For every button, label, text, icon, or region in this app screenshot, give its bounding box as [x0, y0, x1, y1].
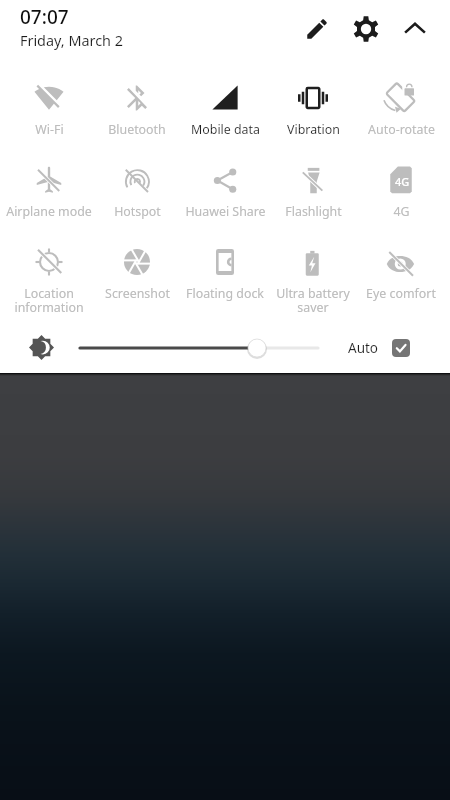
button[interactable]: Location information	[5, 237, 93, 319]
button[interactable]: Mobile data	[181, 73, 269, 155]
button[interactable]: Screenshot	[93, 237, 181, 319]
staticText: Auto-rotate	[368, 121, 435, 138]
staticText: 07:07	[20, 4, 69, 30]
button[interactable]: Bluetooth	[93, 73, 181, 155]
button[interactable]: Wi-Fi	[5, 73, 93, 155]
staticText: Mobile data	[191, 121, 260, 138]
staticText: Airplane mode	[6, 203, 92, 220]
button[interactable]: Edit	[297, 9, 337, 49]
staticText: Flashlight	[285, 203, 342, 220]
button[interactable]: 4G	[357, 155, 445, 237]
staticText: 4G	[393, 203, 410, 220]
button[interactable]: Collapse	[395, 9, 435, 49]
staticText: Ultra battery saver	[276, 285, 350, 316]
button[interactable]: Eye comfort	[357, 237, 445, 319]
staticText: Huawei Share	[185, 203, 266, 220]
button[interactable]: Vibration	[269, 73, 357, 155]
staticText: Screenshot	[105, 285, 170, 302]
staticText: Friday, March 2	[20, 31, 123, 51]
button[interactable]: Settings	[346, 9, 386, 49]
staticText: Floating dock	[186, 285, 264, 302]
staticText: Location information	[14, 285, 84, 316]
staticText: Hotspot	[114, 203, 161, 220]
button[interactable]: Floating dock	[181, 237, 269, 319]
staticText: Bluetooth	[108, 121, 166, 138]
staticText: Eye comfort	[366, 285, 436, 302]
button[interactable]: Ultra battery saver	[269, 237, 357, 319]
staticText: Vibration	[287, 121, 340, 138]
button[interactable]: Airplane mode	[5, 155, 93, 237]
button[interactable]: Flashlight	[269, 155, 357, 237]
button[interactable]: Hotspot	[93, 155, 181, 237]
staticText: Wi-Fi	[35, 121, 64, 138]
staticText: 4G	[395, 174, 410, 189]
button[interactable]: Auto	[348, 339, 410, 357]
button[interactable]: Auto-rotate	[357, 73, 445, 155]
staticText: Auto	[348, 339, 379, 357]
button[interactable]: Huawei Share	[181, 155, 269, 237]
